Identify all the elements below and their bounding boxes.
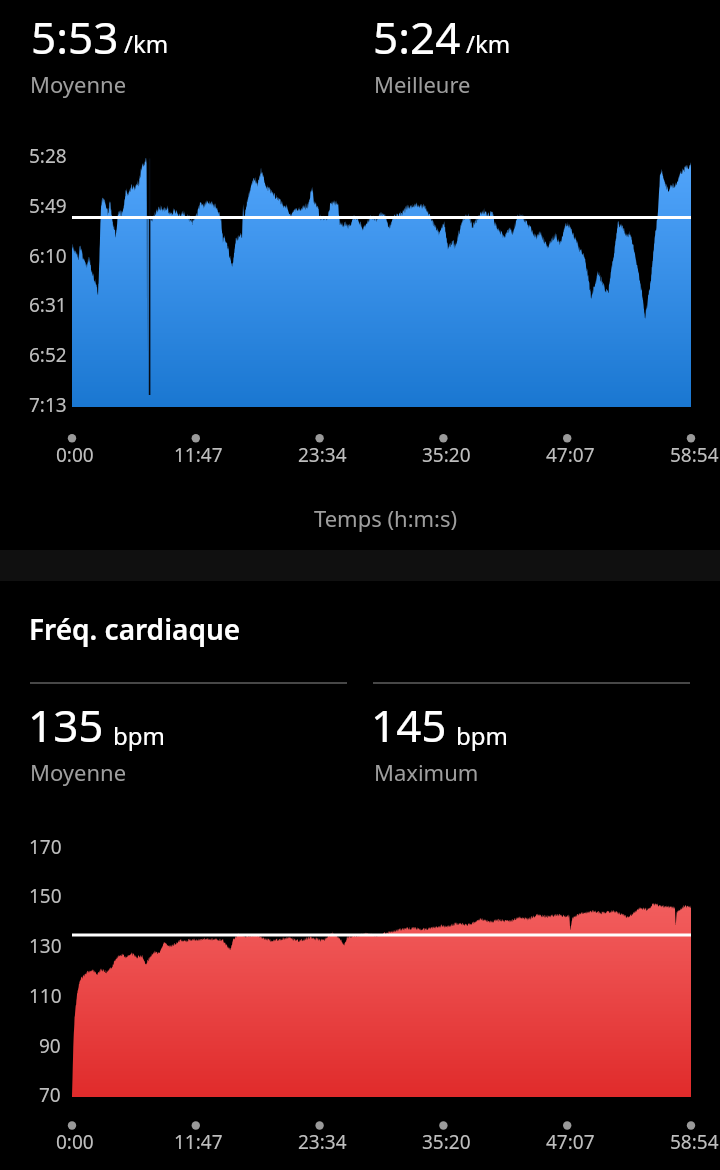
staticText: 6:52: [29, 342, 67, 368]
staticText: bpm: [456, 719, 508, 752]
staticText: 5:49: [29, 193, 67, 219]
staticText: 58:54: [670, 1129, 719, 1155]
staticText: 145: [371, 695, 447, 755]
staticText: /km: [466, 27, 511, 60]
staticText: Moyenne: [30, 69, 127, 99]
staticText: 90: [39, 1033, 61, 1059]
staticText: Maximum: [374, 757, 479, 787]
staticText: 7:13: [29, 392, 67, 418]
staticText: 11:47: [174, 1129, 223, 1155]
staticText: 47:07: [546, 442, 595, 468]
staticText: 23:34: [298, 442, 347, 468]
button[interactable]: Graphique de fréquence cardiaque: [0, 810, 720, 1160]
button[interactable]: 5:24: [360, 0, 720, 110]
staticText: 35:20: [422, 442, 471, 468]
staticText: 58:54: [670, 442, 719, 468]
staticText: 47:07: [546, 1129, 595, 1155]
staticText: 110: [29, 983, 62, 1009]
staticText: Meilleure: [374, 69, 471, 99]
staticText: 5:28: [29, 143, 67, 169]
button[interactable]: Graphique d'allure: [0, 120, 720, 550]
staticText: 35:20: [422, 1129, 471, 1155]
button[interactable]: Fréq. cardiaque: [0, 592, 720, 658]
button[interactable]: 135: [0, 688, 360, 798]
staticText: 5:24: [373, 7, 461, 67]
staticText: 23:34: [298, 1129, 347, 1155]
staticText: 150: [29, 883, 62, 909]
staticText: Moyenne: [30, 757, 127, 787]
staticText: 6:10: [29, 243, 67, 269]
staticText: 130: [29, 933, 62, 959]
staticText: 0:00: [56, 1129, 94, 1155]
staticText: 6:31: [29, 292, 67, 318]
staticText: bpm: [113, 719, 165, 752]
staticText: 11:47: [174, 442, 223, 468]
staticText: 170: [29, 834, 62, 860]
staticText: Fréq. cardiaque: [29, 610, 241, 648]
staticText: 5:53: [31, 7, 119, 67]
staticText: /km: [124, 27, 169, 60]
button[interactable]: 5:53: [0, 0, 360, 110]
staticText: 135: [28, 695, 104, 755]
staticText: 70: [39, 1082, 61, 1108]
staticText: Temps (h:m:s): [314, 503, 458, 533]
button[interactable]: 145: [360, 688, 720, 798]
staticText: 0:00: [56, 442, 94, 468]
